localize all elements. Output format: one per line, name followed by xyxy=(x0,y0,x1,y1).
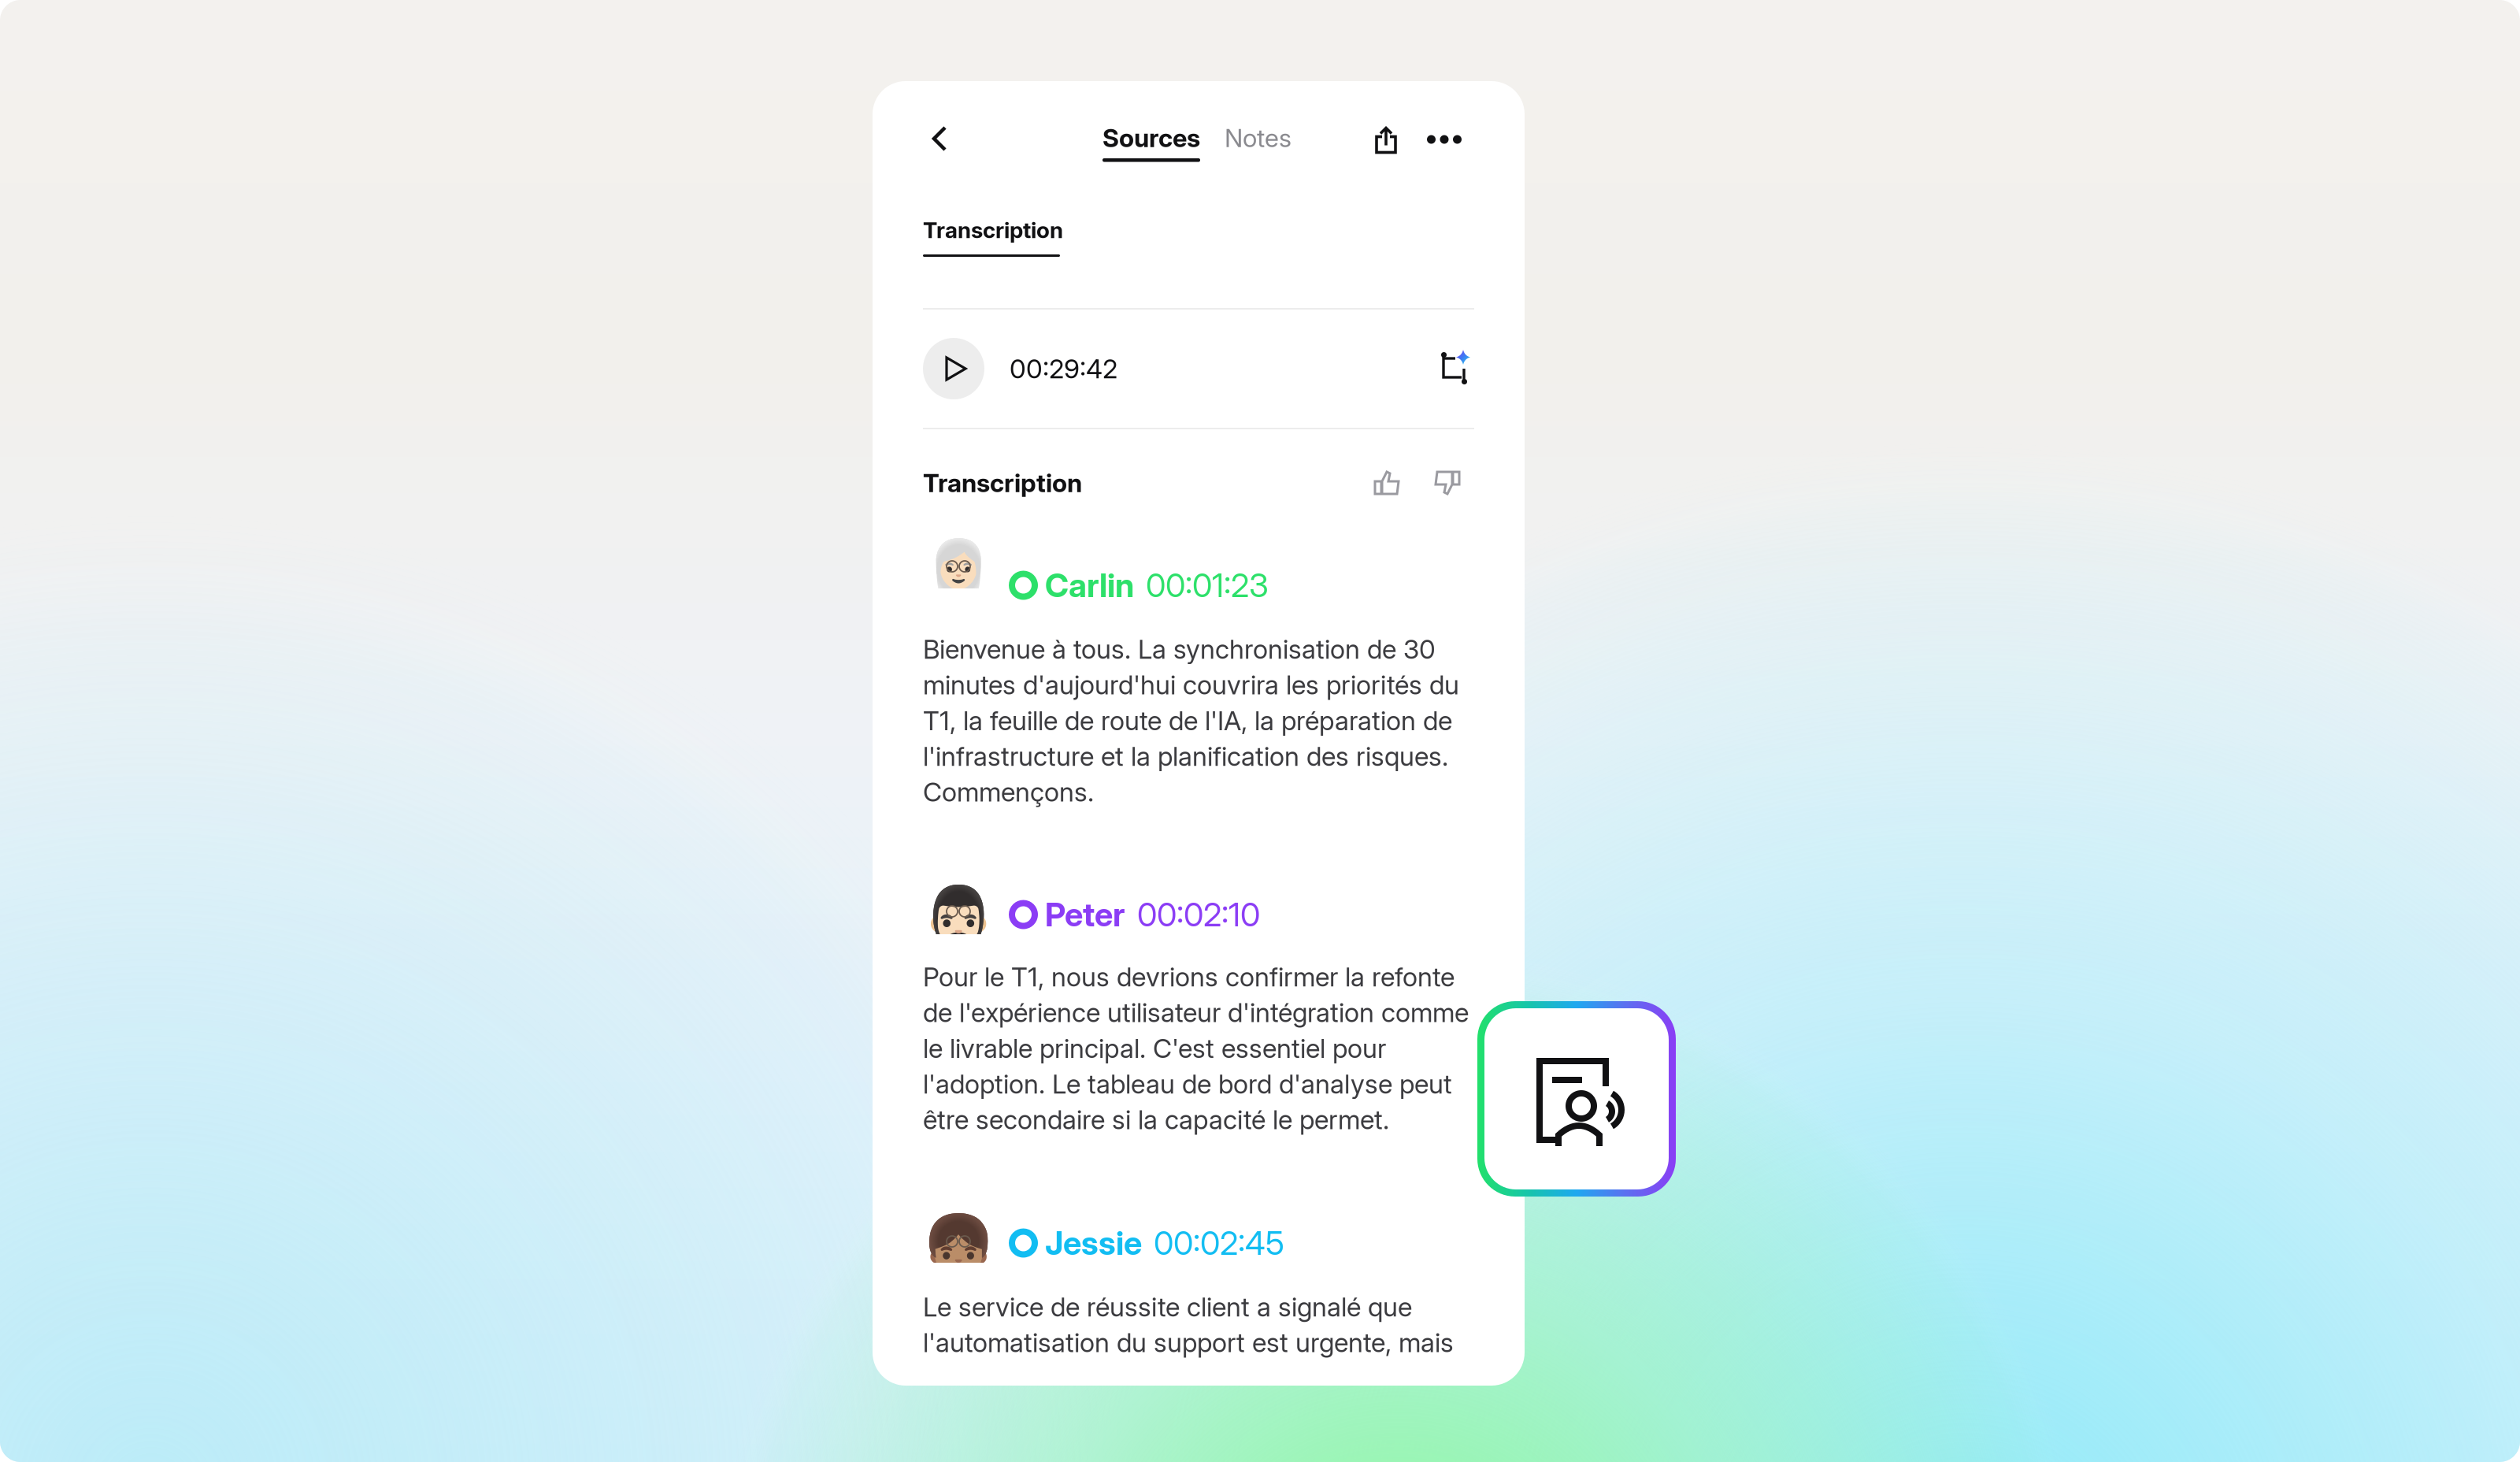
staticText: Jessie xyxy=(1045,1223,1142,1263)
button[interactable]: Generate summary xyxy=(1440,351,1474,387)
staticText: 👧🏽 xyxy=(921,1211,996,1282)
staticText: Le service de réussite client a signalé … xyxy=(923,1291,1454,1359)
button[interactable]: Share xyxy=(1370,123,1402,158)
staticText: 00:02:45 xyxy=(1154,1223,1284,1263)
button[interactable]: Bad transcription xyxy=(1401,466,1462,500)
staticText: Carlin xyxy=(1045,566,1134,605)
staticText: 00:29:42 xyxy=(1010,353,1117,384)
staticText: 👩🏻‍🦳 xyxy=(921,536,996,608)
button[interactable]: Back xyxy=(919,118,960,159)
button[interactable]: Play xyxy=(923,338,984,399)
staticText: Sources xyxy=(1102,123,1200,153)
button[interactable]: Transcription xyxy=(923,218,1066,258)
button[interactable]: Notes xyxy=(1225,124,1295,151)
staticText: Peter xyxy=(1045,895,1125,934)
staticText: Notes xyxy=(1225,123,1291,153)
button[interactable]: Good transcription xyxy=(1373,466,1401,500)
staticText: Transcription xyxy=(923,217,1063,243)
button[interactable]: More xyxy=(1420,122,1469,157)
button[interactable]: Sources xyxy=(1102,124,1203,165)
staticText: Bienvenue à tous. La synchronisation de … xyxy=(923,633,1459,808)
staticText: Transcription xyxy=(923,468,1082,498)
button[interactable]: Transcribe xyxy=(1477,1001,1676,1197)
staticText: 00:01:23 xyxy=(1146,566,1269,605)
staticText: Pour le T1, nous devrions confirmer la r… xyxy=(923,961,1469,1136)
staticText: 00:02:10 xyxy=(1137,895,1260,934)
staticText: 🧔🏻‍♂️ xyxy=(921,882,996,954)
